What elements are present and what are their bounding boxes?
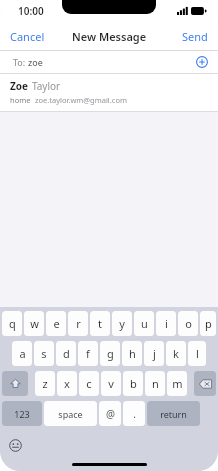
staticText: z	[42, 376, 48, 391]
staticText: p	[205, 316, 212, 331]
button[interactable]: e	[46, 311, 66, 336]
staticText: home	[10, 95, 31, 105]
staticText: space	[58, 408, 83, 420]
button[interactable]: Shift	[2, 371, 28, 396]
button[interactable]: z	[35, 371, 55, 396]
button[interactable]: @	[99, 401, 121, 426]
button[interactable]: k	[166, 341, 186, 366]
staticText: e	[53, 316, 60, 331]
staticText: y	[119, 316, 125, 331]
button[interactable]: f	[78, 341, 98, 366]
staticText: zoe	[28, 56, 43, 68]
staticText: Taylor	[32, 79, 61, 93]
button[interactable]: b	[123, 371, 143, 396]
button[interactable]: o	[178, 311, 198, 336]
button[interactable]: n	[145, 371, 165, 396]
button[interactable]: v	[101, 371, 121, 396]
staticText: @	[106, 407, 115, 421]
staticText: t	[98, 316, 102, 331]
button[interactable]: a	[12, 341, 32, 366]
staticText: n	[152, 376, 159, 391]
staticText: w	[30, 316, 39, 331]
button[interactable]: .	[123, 401, 145, 426]
staticText: d	[63, 346, 70, 361]
staticText: zoe.taylor.wm@gmail.com	[35, 95, 127, 105]
button[interactable]: 123	[2, 401, 42, 426]
staticText: b	[130, 376, 137, 391]
staticText: 123	[14, 408, 30, 420]
button[interactable]: h	[122, 341, 142, 366]
staticText: New Message	[72, 29, 147, 44]
button[interactable]: s	[34, 341, 54, 366]
staticText: k	[173, 346, 179, 361]
staticText: Cancel	[10, 29, 45, 44]
button[interactable]: x	[57, 371, 77, 396]
staticText: f	[86, 346, 90, 361]
staticText: Send	[182, 29, 208, 44]
button[interactable]: Zoe	[0, 74, 218, 111]
staticText: g	[107, 346, 114, 361]
button[interactable]: l	[188, 341, 206, 366]
staticText: v	[108, 376, 114, 391]
button[interactable]: g	[100, 341, 120, 366]
button[interactable]: r	[68, 311, 88, 336]
button[interactable]: p	[200, 311, 216, 336]
staticText: o	[185, 316, 192, 331]
staticText: c	[86, 376, 92, 391]
staticText: q	[9, 316, 16, 331]
staticText: j	[153, 346, 156, 361]
button[interactable]: Backspace	[194, 371, 216, 396]
button[interactable]: return	[147, 401, 200, 426]
staticText: .	[133, 407, 136, 421]
button[interactable]: i	[156, 311, 176, 336]
staticText: h	[129, 346, 136, 361]
staticText: l	[196, 346, 199, 361]
staticText: x	[64, 376, 70, 391]
staticText: Zoe	[10, 79, 29, 93]
button[interactable]: c	[79, 371, 99, 396]
staticText: i	[165, 316, 168, 331]
button[interactable]: Add contact	[192, 52, 212, 72]
staticText: m	[172, 376, 183, 391]
button[interactable]: q	[2, 311, 22, 336]
button[interactable]: m	[167, 371, 187, 396]
staticText: s	[41, 346, 47, 361]
staticText: u	[141, 316, 148, 331]
staticText: 10:00	[18, 4, 44, 18]
button[interactable]: j	[144, 341, 164, 366]
button[interactable]: space	[44, 401, 97, 426]
button[interactable]: d	[56, 341, 76, 366]
button[interactable]: Cancel	[0, 24, 55, 49]
button[interactable]: w	[24, 311, 44, 336]
staticText: return	[160, 408, 187, 420]
staticText: a	[19, 346, 26, 361]
button[interactable]: Emoji	[7, 437, 24, 454]
staticText: To:	[13, 56, 28, 68]
button[interactable]: u	[134, 311, 154, 336]
button[interactable]: Send	[172, 24, 218, 49]
staticText: r	[76, 316, 81, 331]
button[interactable]: t	[90, 311, 110, 336]
button[interactable]: y	[112, 311, 132, 336]
